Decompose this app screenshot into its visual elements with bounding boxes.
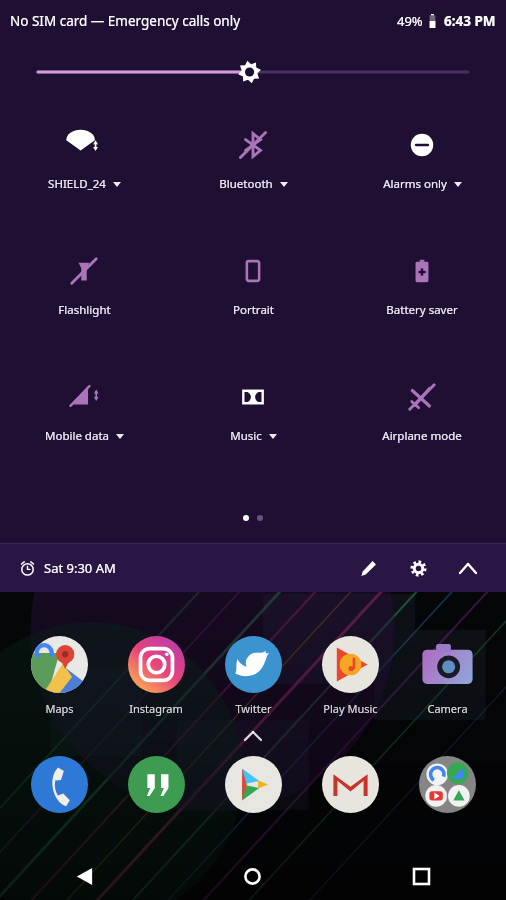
button[interactable]: Instagram — [110, 636, 202, 716]
button[interactable]: Brightness — [38, 56, 468, 88]
button[interactable]: Play Music — [304, 636, 396, 716]
button[interactable]: Camera — [401, 636, 493, 716]
button[interactable]: Bluetooth — [178, 126, 328, 194]
staticText: Mobile data — [45, 428, 109, 444]
staticText: Maps — [45, 701, 74, 716]
staticText: Instagram — [129, 701, 183, 716]
button[interactable] — [13, 756, 105, 813]
button[interactable]: Collapse — [446, 546, 490, 590]
staticText: Airplane mode — [382, 428, 462, 444]
button[interactable]: Portrait — [178, 252, 328, 320]
staticText: Battery saver — [386, 302, 458, 318]
staticText: Twitter — [235, 701, 272, 716]
staticText: 6:43 PM — [444, 12, 496, 30]
button[interactable] — [401, 756, 493, 813]
staticText: Camera — [427, 701, 468, 716]
staticText: 49% — [397, 12, 423, 30]
staticText: Play Music — [323, 701, 378, 716]
button[interactable]: Home — [168, 852, 337, 900]
button[interactable] — [304, 756, 396, 813]
staticText: Sat 9:30 AM — [44, 559, 116, 577]
button[interactable]: Maps — [13, 636, 105, 716]
staticText: SHIELD_24 — [48, 176, 106, 192]
button[interactable]: Mobile data — [9, 378, 159, 446]
button[interactable]: Music — [178, 378, 328, 446]
button[interactable]: Alarms only — [347, 126, 497, 194]
staticText: Portrait — [233, 302, 274, 318]
button[interactable]: Edit — [346, 546, 390, 590]
button[interactable] — [207, 756, 299, 813]
staticText: Music — [230, 428, 262, 444]
button[interactable]: Flashlight — [9, 252, 159, 320]
button[interactable]: Back — [0, 852, 168, 900]
button[interactable]: Battery saver — [347, 252, 497, 320]
staticText: Flashlight — [58, 302, 111, 318]
button[interactable]: Twitter — [207, 636, 299, 716]
button[interactable]: SHIELD_24 — [9, 126, 159, 194]
staticText: No SIM card — Emergency calls only — [10, 12, 241, 30]
staticText: Alarms only — [383, 176, 447, 192]
button[interactable]: Airplane mode — [347, 378, 497, 446]
button[interactable] — [110, 756, 202, 813]
button[interactable]: Recents — [337, 852, 506, 900]
staticText: Bluetooth — [219, 176, 273, 192]
button[interactable]: Sat 9:30 AM — [16, 553, 120, 583]
button[interactable]: Settings — [396, 546, 440, 590]
